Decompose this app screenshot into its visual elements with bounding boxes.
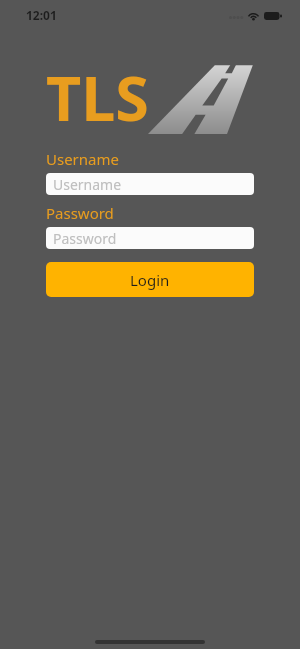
staticText: Login <box>130 270 170 290</box>
staticText: Username <box>53 175 122 194</box>
staticText: Password <box>46 203 114 223</box>
staticText: 12:01 <box>26 7 57 23</box>
staticText: Username <box>46 149 119 169</box>
button[interactable]: Username <box>46 173 254 195</box>
staticText: Password <box>53 229 117 248</box>
button[interactable]: Login <box>46 262 254 297</box>
staticText: TLS <box>46 56 149 134</box>
button[interactable]: Password <box>46 227 254 249</box>
